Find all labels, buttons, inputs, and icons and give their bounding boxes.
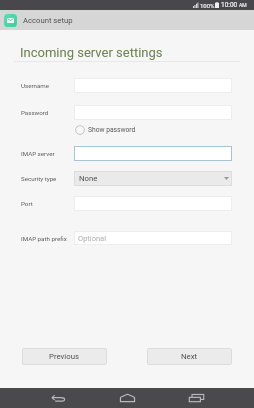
button[interactable]: None: [74, 171, 232, 186]
button[interactable]: Previous: [22, 348, 107, 365]
staticText: Incoming server settings: [20, 45, 163, 60]
button[interactable]: [74, 78, 232, 93]
staticText: Password: [21, 109, 49, 116]
button[interactable]: [74, 146, 232, 161]
staticText: None: [79, 174, 98, 183]
staticText: Account setup: [23, 16, 73, 25]
button[interactable]: Account setup: [0, 10, 254, 30]
staticText: Security type: [21, 175, 57, 182]
staticText: IMAP path prefix: [21, 235, 67, 242]
button[interactable]: Recents: [181, 388, 212, 408]
staticText: Optional: [78, 234, 106, 243]
staticText: AM: [239, 2, 247, 8]
button[interactable]: Next: [147, 348, 232, 365]
button[interactable]: [74, 196, 232, 211]
staticText: 10:00: [221, 1, 238, 9]
staticText: Previous: [49, 352, 80, 361]
staticText: 100%: [200, 2, 215, 9]
staticText: Next: [181, 352, 198, 361]
button[interactable]: Back: [43, 388, 74, 408]
staticText: IMAP server: [21, 150, 55, 157]
button[interactable]: [74, 105, 232, 120]
staticText: Username: [21, 82, 50, 89]
button[interactable]: Optional: [74, 231, 232, 245]
staticText: Port: [21, 200, 33, 207]
button[interactable]: Show password: [75, 125, 136, 135]
button[interactable]: Home: [112, 388, 143, 408]
staticText: Show password: [88, 126, 136, 134]
